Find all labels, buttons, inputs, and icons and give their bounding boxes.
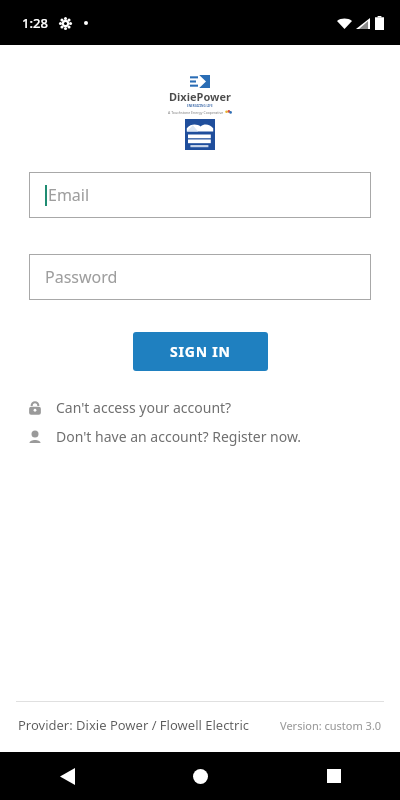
button[interactable]: Email (29, 172, 371, 218)
staticText: Provider: Dixie Power / Flowell Electric (18, 716, 250, 734)
button[interactable]: Home (134, 752, 267, 800)
staticText: DixiePower (169, 89, 231, 104)
staticText: Don't have an account? Register now. (56, 427, 302, 446)
staticText: Can't access your account? (56, 398, 232, 417)
button[interactable]: Register new account (0, 425, 400, 448)
staticText: A Touchstone Energy Cooperative (168, 110, 224, 115)
staticText: Password (45, 266, 118, 288)
staticText: 1:28 (22, 14, 48, 32)
button[interactable]: Back (0, 752, 134, 800)
other: Register new account (28, 429, 42, 445)
button[interactable]: SIGN IN (133, 332, 268, 371)
button[interactable]: Password (29, 254, 371, 300)
button[interactable]: Recent apps (267, 752, 400, 800)
button[interactable]: Locked account (0, 396, 400, 419)
staticText: Version: custom 3.0 (280, 718, 382, 733)
staticText: ENERGIZING LIFE (187, 104, 213, 108)
staticText: SIGN IN (170, 342, 231, 361)
staticText: Email (48, 184, 90, 206)
other: Locked account (28, 400, 42, 416)
